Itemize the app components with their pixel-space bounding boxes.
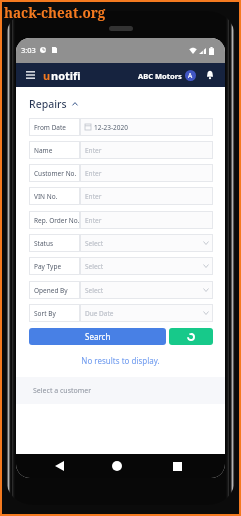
button[interactable]: Recents	[169, 458, 185, 474]
staticText: Pay Type	[34, 262, 62, 271]
button[interactable]: Back	[51, 458, 67, 474]
staticText: Enter	[85, 192, 102, 201]
button[interactable]: Select a customer	[16, 377, 225, 404]
staticText: No results to display.	[16, 355, 225, 366]
staticText: Name	[34, 146, 53, 155]
staticText: Customer No.	[34, 169, 77, 178]
staticText: Sort By	[34, 309, 56, 318]
button[interactable]: Search	[29, 328, 166, 345]
button[interactable]: A	[185, 70, 196, 81]
button[interactable]: From Date	[29, 118, 213, 136]
staticText: Select a customer	[33, 386, 92, 396]
staticText: 3:03	[21, 45, 36, 55]
staticText: VIN No.	[34, 192, 58, 201]
staticText: Select	[85, 262, 104, 271]
staticText: Search	[85, 331, 111, 342]
staticText: Status	[34, 239, 54, 248]
staticText: Opened By	[34, 286, 68, 295]
button[interactable]: VIN No.	[29, 187, 213, 205]
staticText: From Date	[34, 123, 67, 132]
staticText: notifi	[51, 68, 81, 83]
button[interactable]: Menu	[20, 65, 40, 85]
staticText: u	[43, 68, 51, 83]
button[interactable]: Sort By	[29, 304, 213, 322]
staticText: Select	[85, 286, 104, 295]
button[interactable]: Notifications	[202, 66, 218, 82]
staticText: Rep. Order No.	[34, 216, 80, 225]
button[interactable]: Customer No.	[29, 164, 213, 182]
staticText: Repairs	[29, 97, 67, 111]
button[interactable]: Pay Type	[29, 257, 213, 275]
button[interactable]: Status	[29, 234, 213, 252]
staticText: ABC Motors	[138, 71, 182, 81]
button[interactable]: Reset	[169, 328, 213, 345]
staticText: hack-cheat.org	[4, 4, 106, 22]
staticText: Due Date	[85, 309, 114, 318]
button[interactable]: Name	[29, 141, 213, 159]
staticText: Enter	[85, 216, 102, 225]
button[interactable]: Home	[109, 458, 125, 474]
staticText: Enter	[85, 169, 102, 178]
button[interactable]: Opened By	[29, 281, 213, 299]
staticText: A	[188, 71, 193, 80]
button[interactable]: Repairs	[29, 96, 78, 112]
button[interactable]: Rep. Order No.	[29, 211, 213, 229]
staticText: Select	[85, 239, 104, 248]
staticText: 12-23-2020	[94, 123, 128, 132]
staticText: Enter	[85, 146, 102, 155]
